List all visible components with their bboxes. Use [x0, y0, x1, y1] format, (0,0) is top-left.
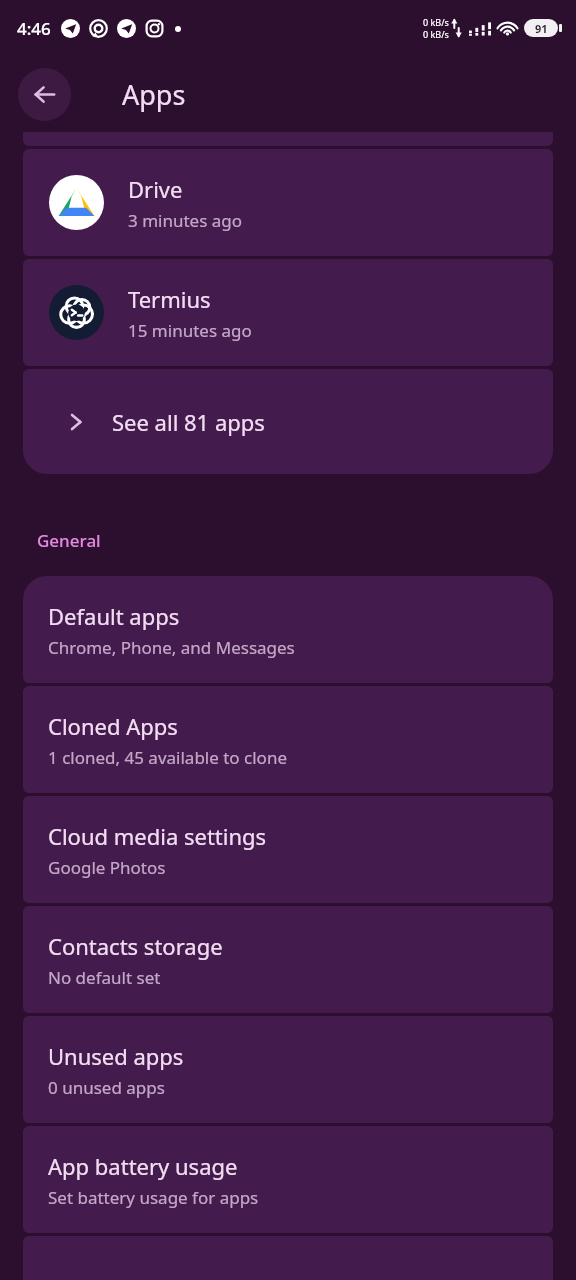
staticText: No default set [48, 966, 161, 989]
staticText: Unused apps [48, 1041, 184, 1071]
staticText: 0 kB/s [423, 28, 449, 40]
button[interactable]: Termius [23, 259, 553, 366]
staticText: Set battery usage for apps [48, 1186, 259, 1209]
staticText: Termius [128, 284, 211, 314]
button[interactable]: Back [18, 68, 71, 121]
button[interactable]: Drive [23, 149, 553, 256]
staticText: 1 cloned, 45 available to clone [48, 746, 288, 769]
button[interactable]: Cloud media settings [23, 796, 553, 903]
staticText: Cloud media settings [48, 821, 267, 851]
staticText: See all 81 apps [112, 407, 265, 437]
button[interactable]: App battery usage [23, 1126, 553, 1233]
staticText: 3 minutes ago [128, 209, 243, 232]
staticText: Cloned Apps [48, 711, 178, 741]
button[interactable]: Default apps [23, 576, 553, 683]
staticText: Drive [128, 174, 183, 204]
button[interactable]: See all 81 apps [23, 369, 553, 474]
button[interactable]: Unused apps [23, 1016, 553, 1123]
staticText: 15 minutes ago [128, 319, 252, 342]
button[interactable]: Contacts storage [23, 906, 553, 1013]
button[interactable]: Cloned Apps [23, 686, 553, 793]
staticText: General [37, 529, 101, 552]
staticText: Apps [122, 76, 186, 113]
staticText: Chrome, Phone, and Messages [48, 636, 295, 659]
staticText: Google Photos [48, 856, 166, 879]
staticText: 0 unused apps [48, 1076, 165, 1099]
staticText: Contacts storage [48, 931, 223, 961]
staticText: App battery usage [48, 1151, 238, 1181]
staticText: 91 [535, 21, 548, 36]
staticText: 4:46 [17, 17, 51, 40]
staticText: 0 kB/s [423, 16, 449, 28]
staticText: Default apps [48, 601, 180, 631]
